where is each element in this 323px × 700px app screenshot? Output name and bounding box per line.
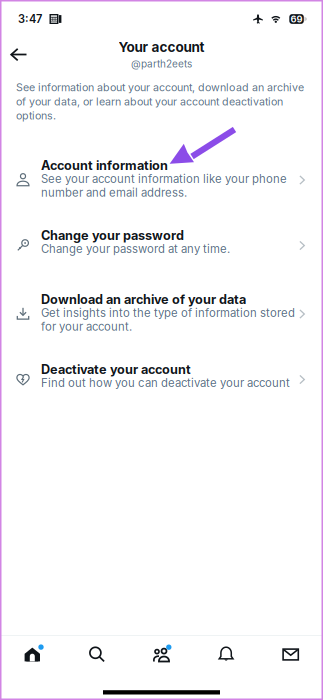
button[interactable]: Account information	[0, 138, 323, 208]
staticText: Your account	[118, 39, 204, 55]
button[interactable]: Notifications	[194, 636, 258, 672]
staticText: Find out how you can deactivate your acc…	[41, 376, 290, 390]
button[interactable]: Search	[65, 636, 129, 672]
staticText: Account information	[41, 158, 168, 173]
staticText: Change your password	[41, 228, 184, 243]
staticText: Download an archive of your data	[41, 292, 246, 307]
button[interactable]: Deactivate your account	[0, 342, 323, 406]
button[interactable]: Messages	[258, 636, 323, 672]
staticText: Deactivate your account	[41, 362, 191, 377]
staticText: See information about your account, down…	[16, 81, 304, 122]
button[interactable]: Home	[0, 636, 65, 672]
staticText: 3:47	[18, 12, 42, 26]
staticText: See your account information like your p…	[41, 172, 287, 199]
staticText: Change your password at any time.	[41, 242, 230, 256]
button[interactable]: Communities	[129, 636, 194, 672]
button[interactable]: Change your password	[0, 208, 323, 272]
staticText: @parth2eets	[131, 58, 192, 70]
button[interactable]: Back	[0, 39, 38, 73]
staticText: Get insights into the type of informatio…	[41, 306, 295, 333]
button[interactable]: Download an archive of your data	[0, 272, 323, 342]
staticText: 69	[290, 13, 302, 25]
